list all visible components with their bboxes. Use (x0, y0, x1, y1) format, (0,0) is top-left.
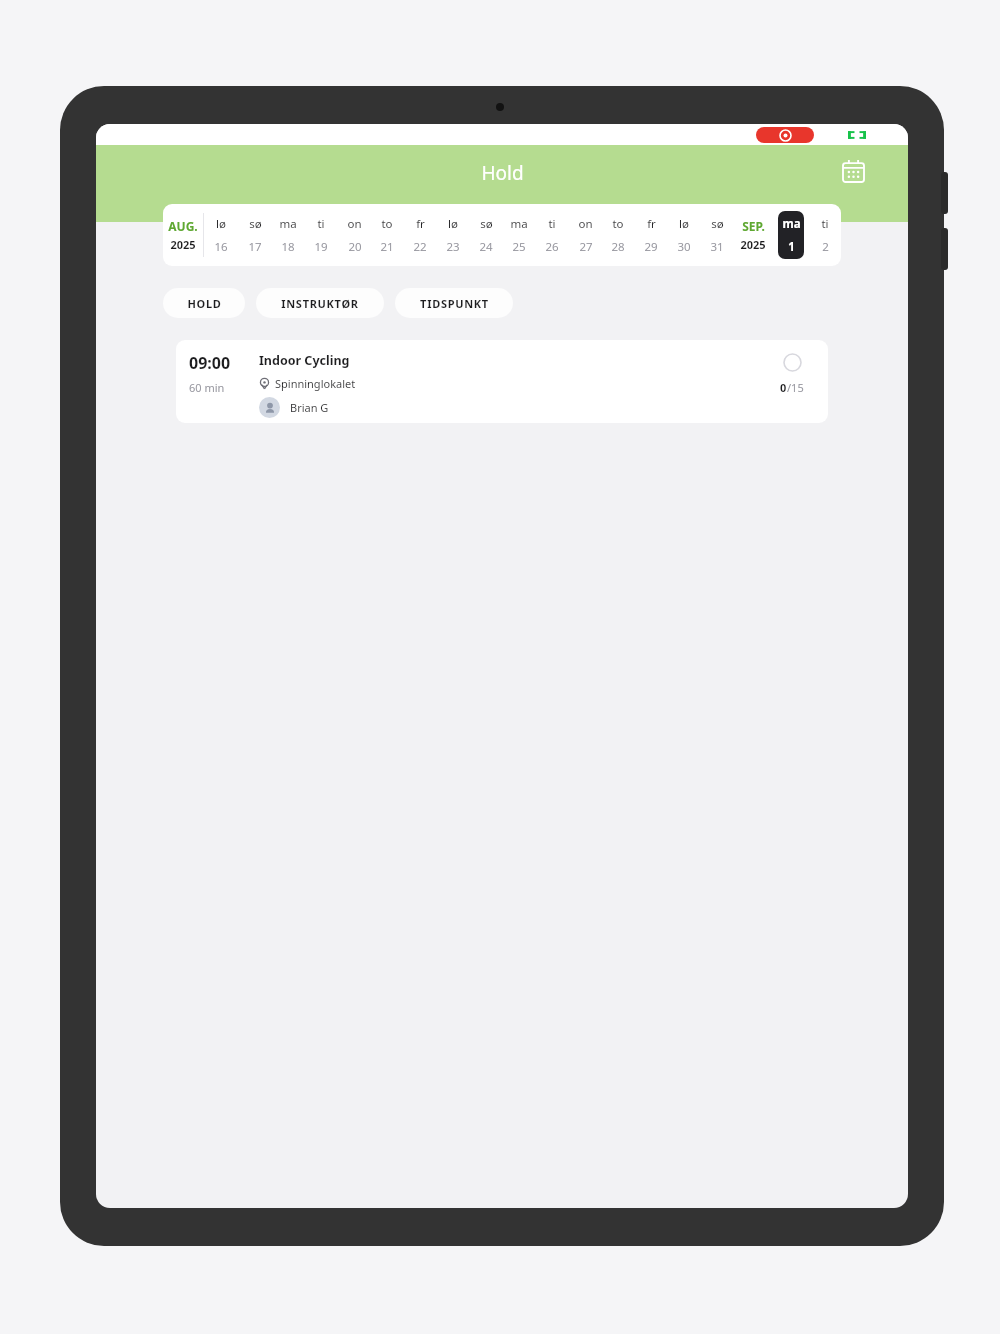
staticText: 21 (380, 239, 394, 255)
button[interactable]: HOLD (163, 288, 245, 318)
staticText: AUG. (168, 218, 198, 234)
button[interactable]: lø (204, 204, 238, 266)
staticText: ma (782, 216, 801, 232)
staticText: INSTRUKTØR (281, 296, 359, 311)
button[interactable]: to (601, 204, 634, 266)
staticText: /15 (787, 380, 804, 395)
button[interactable]: sø (238, 204, 271, 266)
staticText: 2025 (170, 237, 196, 252)
button[interactable]: 09:00 (176, 340, 828, 423)
button[interactable]: ti (535, 204, 568, 266)
staticText: 24 (479, 239, 493, 255)
staticText: sø (249, 216, 262, 232)
staticText: 22 (413, 239, 427, 255)
staticText: 23 (446, 239, 460, 255)
staticText: lø (679, 216, 689, 232)
button[interactable]: ma (271, 204, 304, 266)
staticText: lø (448, 216, 458, 232)
staticText: Indoor Cycling (259, 352, 350, 369)
button[interactable]: Calendar (836, 154, 870, 188)
staticText: 1 (788, 239, 795, 255)
staticText: 18 (281, 239, 295, 255)
staticText: Brian G (290, 400, 329, 415)
button[interactable]: ma (773, 204, 808, 266)
button[interactable]: sø (700, 204, 733, 266)
staticText: fr (647, 216, 656, 232)
staticText: on (347, 216, 362, 232)
staticText: Hold (481, 160, 524, 186)
staticText: 60 min (189, 380, 225, 395)
staticText: 25 (512, 239, 526, 255)
staticText: 0 (780, 380, 787, 395)
button[interactable]: ma (502, 204, 535, 266)
staticText: lø (216, 216, 226, 232)
staticText: to (381, 216, 393, 232)
staticText: 09:00 (189, 352, 231, 374)
staticText: on (578, 216, 593, 232)
button[interactable]: fr (403, 204, 436, 266)
staticText: TIDSPUNKT (420, 296, 489, 311)
button[interactable]: on (568, 204, 601, 266)
button[interactable]: to (370, 204, 403, 266)
staticText: 16 (214, 239, 228, 255)
staticText: ti (548, 216, 556, 232)
staticText: Spinninglokalet (275, 376, 356, 391)
staticText: ma (510, 216, 528, 232)
other: Recording (756, 127, 814, 143)
staticText: ti (821, 216, 829, 232)
staticText: 29 (644, 239, 658, 255)
staticText: fr (416, 216, 425, 232)
button[interactable]: lø (667, 204, 700, 266)
staticText: 19 (314, 239, 328, 255)
staticText: to (612, 216, 624, 232)
button[interactable]: TIDSPUNKT (395, 288, 513, 318)
staticText: 27 (579, 239, 593, 255)
staticText: 26 (545, 239, 559, 255)
button[interactable]: INSTRUKTØR (256, 288, 384, 318)
staticText: sø (711, 216, 724, 232)
staticText: SEP. (742, 218, 765, 234)
button[interactable]: ti (304, 204, 337, 266)
staticText: sø (480, 216, 493, 232)
staticText: ma (279, 216, 297, 232)
staticText: 30 (677, 239, 691, 255)
button[interactable]: lø (436, 204, 469, 266)
staticText: 2 (822, 239, 829, 255)
staticText: HOLD (187, 296, 222, 311)
button[interactable]: fr (634, 204, 667, 266)
staticText: 31 (710, 239, 724, 255)
button[interactable]: sø (469, 204, 502, 266)
button[interactable]: ti (808, 204, 841, 266)
staticText: 17 (248, 239, 262, 255)
button[interactable]: on (337, 204, 370, 266)
staticText: ti (317, 216, 325, 232)
staticText: 20 (348, 239, 362, 255)
staticText: 2025 (740, 237, 766, 252)
staticText: 28 (611, 239, 625, 255)
